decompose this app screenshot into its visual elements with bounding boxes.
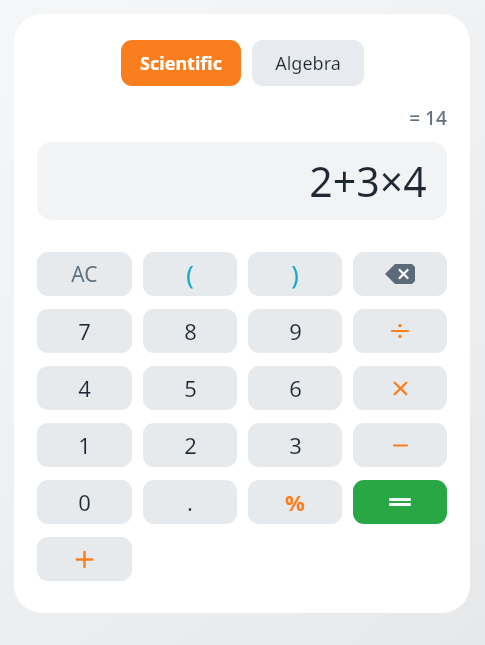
staticText: ( xyxy=(186,257,194,291)
button[interactable]: Backspace xyxy=(353,252,447,296)
staticText: 9 xyxy=(289,316,302,346)
button[interactable]: Scientific xyxy=(121,40,241,86)
button[interactable]: 8 xyxy=(143,309,237,353)
button[interactable]: 6 xyxy=(248,366,342,410)
button[interactable]: AC xyxy=(37,252,132,296)
button[interactable]: ( xyxy=(143,252,237,296)
button[interactable]: 1 xyxy=(37,423,132,467)
button[interactable]: Plus xyxy=(37,537,132,581)
staticText: = 14 xyxy=(409,105,447,131)
staticText: 2 xyxy=(184,430,197,460)
staticText: . xyxy=(187,487,193,517)
button[interactable]: % xyxy=(248,480,342,524)
staticText: 3 xyxy=(289,430,302,460)
staticText: AC xyxy=(71,260,98,289)
staticText: ) xyxy=(291,257,299,291)
staticText: Algebra xyxy=(275,51,341,76)
button[interactable]: 9 xyxy=(248,309,342,353)
button[interactable]: ) xyxy=(248,252,342,296)
staticText: 2+3×4 xyxy=(309,153,427,209)
button[interactable]: . xyxy=(143,480,237,524)
button[interactable]: Equals xyxy=(353,480,447,524)
staticText: % xyxy=(285,487,305,517)
staticText: 7 xyxy=(78,316,91,346)
button[interactable]: Divide xyxy=(353,309,447,353)
button[interactable]: Multiply xyxy=(353,366,447,410)
button[interactable]: 2 xyxy=(143,423,237,467)
staticText: Scientific xyxy=(140,51,222,76)
button[interactable]: Minus xyxy=(353,423,447,467)
staticText: 6 xyxy=(289,373,302,403)
button[interactable]: 0 xyxy=(37,480,132,524)
button[interactable]: 5 xyxy=(143,366,237,410)
staticText: 0 xyxy=(78,487,91,517)
button[interactable]: 7 xyxy=(37,309,132,353)
staticText: 5 xyxy=(184,373,197,403)
button[interactable]: Algebra xyxy=(252,40,364,86)
button[interactable]: 4 xyxy=(37,366,132,410)
staticText: 4 xyxy=(78,373,91,403)
staticText: 8 xyxy=(184,316,197,346)
staticText: 1 xyxy=(78,430,91,460)
button[interactable]: 3 xyxy=(248,423,342,467)
